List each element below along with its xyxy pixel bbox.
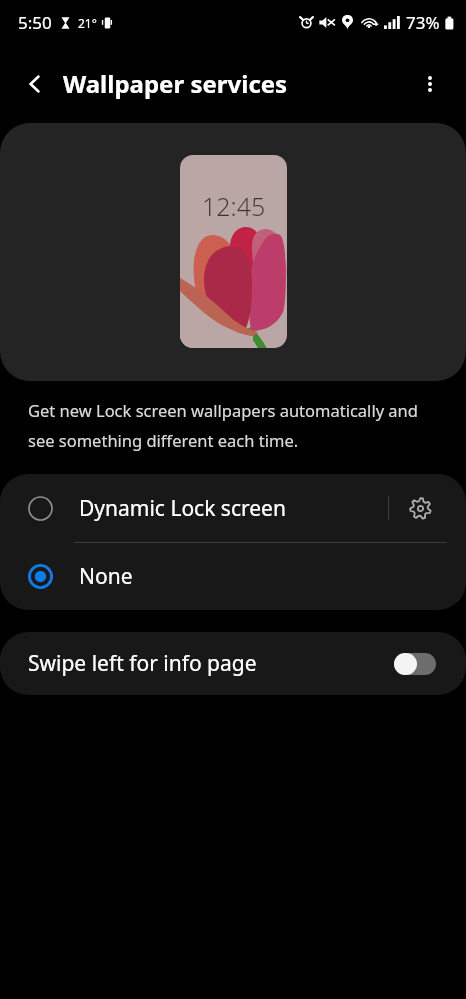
staticText: 73% — [406, 11, 440, 34]
button[interactable]: 12:45 — [180, 155, 287, 348]
staticText: 12:45 — [202, 189, 266, 223]
staticText: 5:50 — [18, 11, 52, 34]
staticText: None — [79, 562, 133, 591]
button[interactable]: Dynamic Lock screen — [0, 474, 466, 542]
button[interactable]: Swipe left for info page — [0, 632, 466, 695]
staticText: Swipe left for info page — [28, 649, 257, 678]
button[interactable]: More options — [408, 62, 452, 106]
button[interactable]: Dynamic Lock screen settings — [389, 474, 451, 542]
staticText: 21° — [78, 15, 97, 31]
staticText: Get new Lock screen wallpapers automatic… — [28, 399, 418, 452]
button[interactable]: None — [0, 543, 466, 610]
button[interactable]: Back — [12, 61, 58, 107]
staticText: Dynamic Lock screen — [79, 494, 286, 523]
staticText: Wallpaper services — [63, 67, 288, 100]
